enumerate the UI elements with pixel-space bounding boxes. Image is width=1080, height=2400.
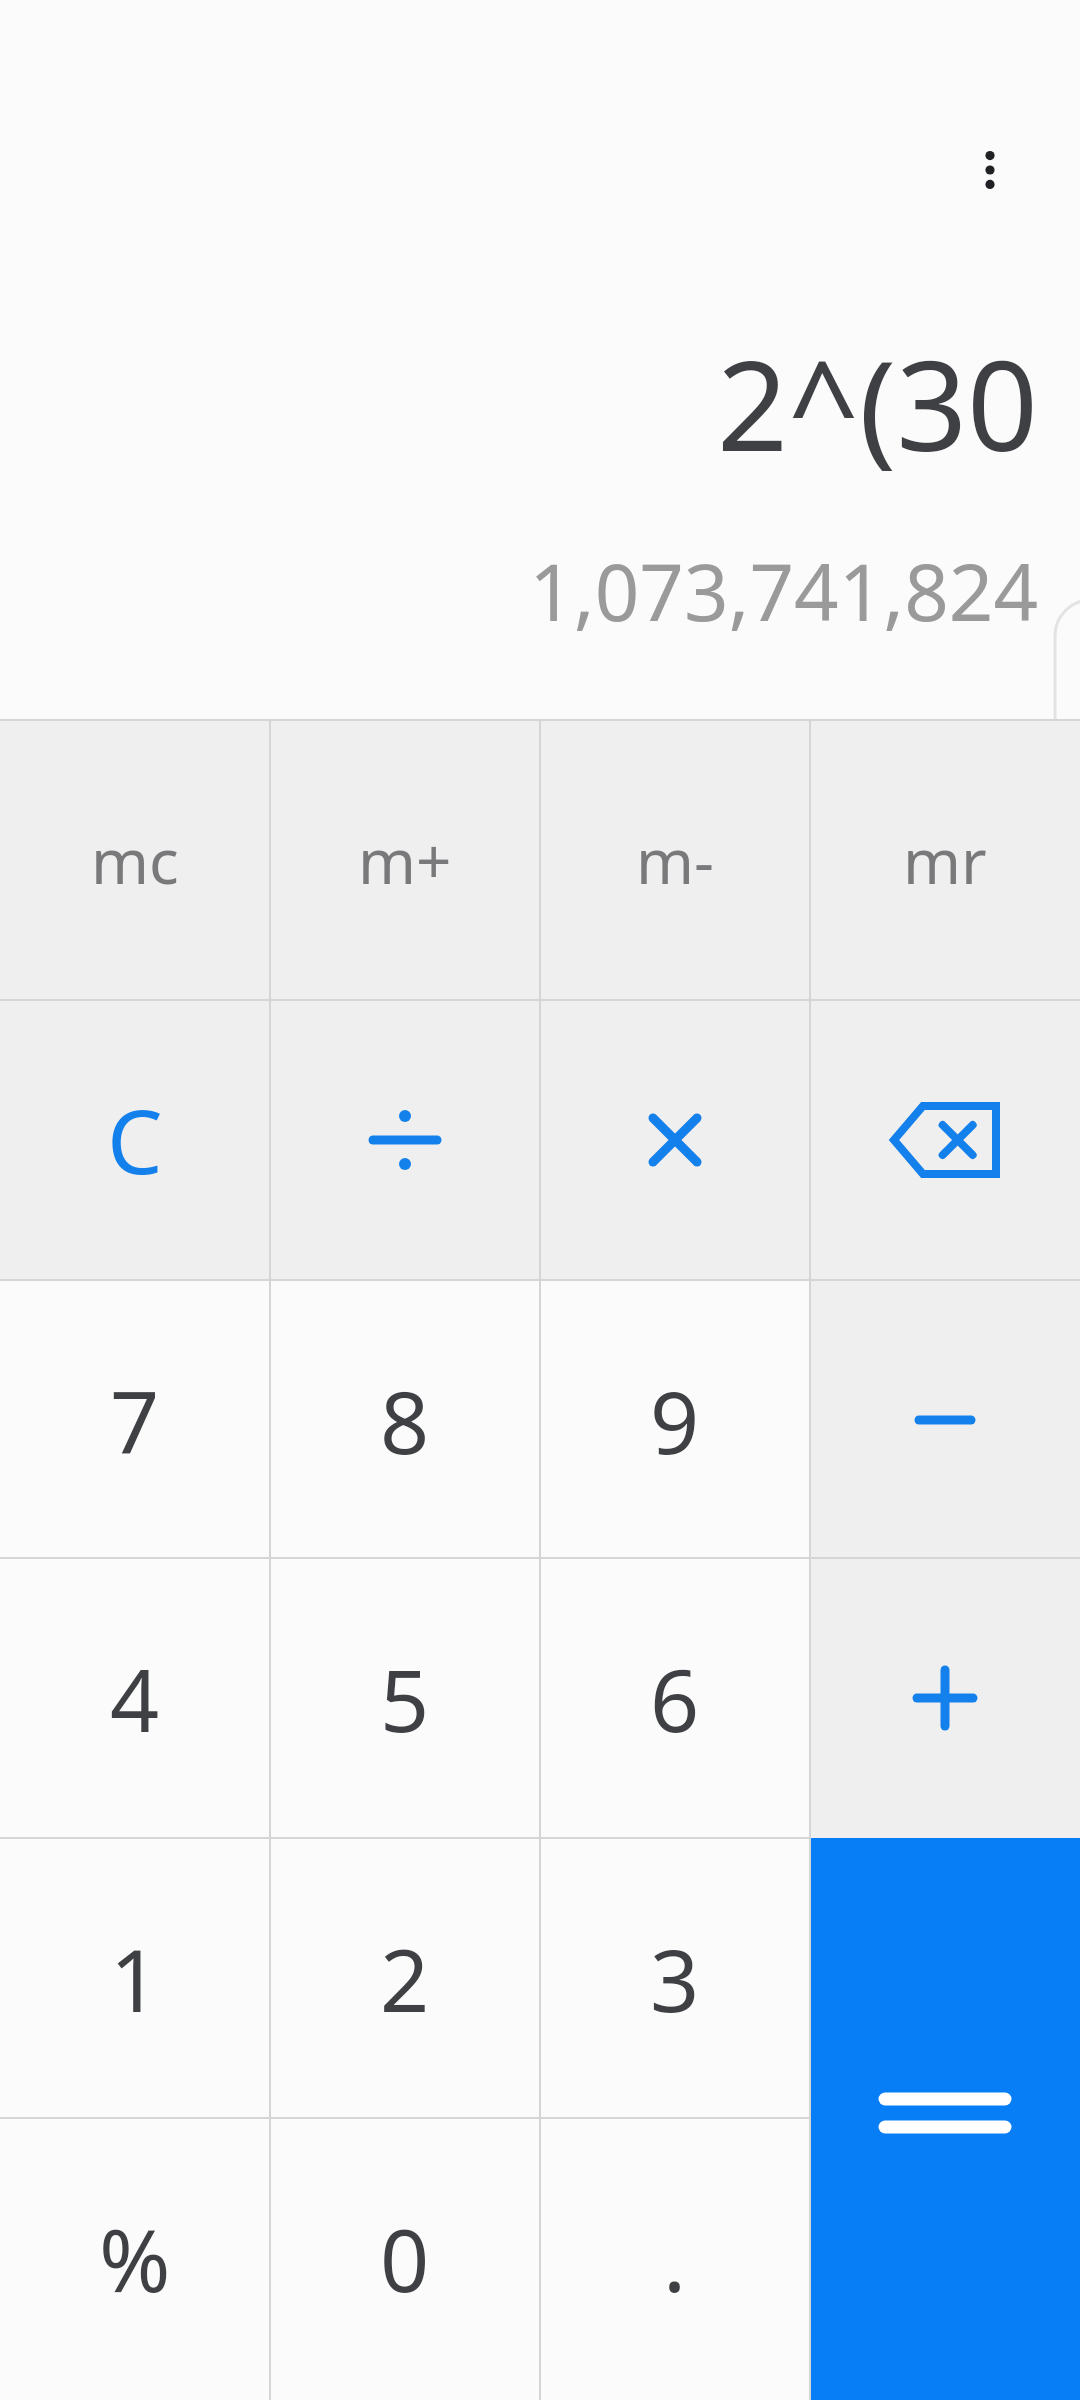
staticText: 2 [380,1920,430,2037]
staticText: 7 [110,1362,160,1479]
other: Backspace [890,1102,1000,1178]
staticText: . [663,2200,687,2317]
button[interactable]: 5 [270,1558,540,1838]
button[interactable]: 2 [270,1838,540,2118]
button[interactable]: 6 [540,1558,810,1838]
button[interactable]: Divide [270,1000,540,1280]
button[interactable]: 1 [0,1838,270,2118]
staticText: 0 [380,2200,430,2317]
staticText: C [107,1080,163,1200]
button[interactable]: 3 [540,1838,810,2118]
staticText: % [99,2200,171,2317]
staticText: 5 [380,1640,430,1757]
other: Minus [905,1380,985,1460]
other: Divide [365,1100,445,1180]
button[interactable]: Backspace [810,1000,1080,1280]
staticText: 3 [650,1920,700,2037]
button[interactable]: m- [540,720,810,1000]
button[interactable]: m+ [270,720,540,1000]
button[interactable]: 7 [0,1280,270,1560]
other: Plus [905,1658,985,1738]
staticText: 1,073,741,824 [0,538,1038,644]
staticText: 6 [650,1640,700,1757]
button[interactable]: mc [0,720,270,1000]
button[interactable]: 8 [270,1280,540,1560]
button[interactable]: % [0,2118,270,2398]
staticText: 2^(30 [0,318,1038,487]
button[interactable]: 4 [0,1558,270,1838]
button[interactable]: Multiply [540,1000,810,1280]
button[interactable]: Equals [810,1838,1080,2400]
staticText: 4 [110,1640,160,1757]
button[interactable]: Operator [810,1280,1080,1560]
button[interactable]: More options [930,110,1050,230]
button[interactable]: 9 [540,1280,810,1560]
staticText: 8 [380,1362,430,1479]
staticText: m- [636,818,714,902]
button[interactable]: C [0,1000,270,1280]
staticText: mr [903,818,987,902]
staticText: mc [91,818,179,902]
button[interactable]: mr [810,720,1080,1000]
button[interactable]: 0 [270,2118,540,2398]
other: Multiply [635,1100,715,1180]
staticText: 1 [110,1920,160,2037]
button[interactable]: Operator [810,1558,1080,1838]
staticText: m+ [358,818,452,902]
staticText: 9 [650,1362,700,1479]
button[interactable]: . [540,2118,810,2398]
